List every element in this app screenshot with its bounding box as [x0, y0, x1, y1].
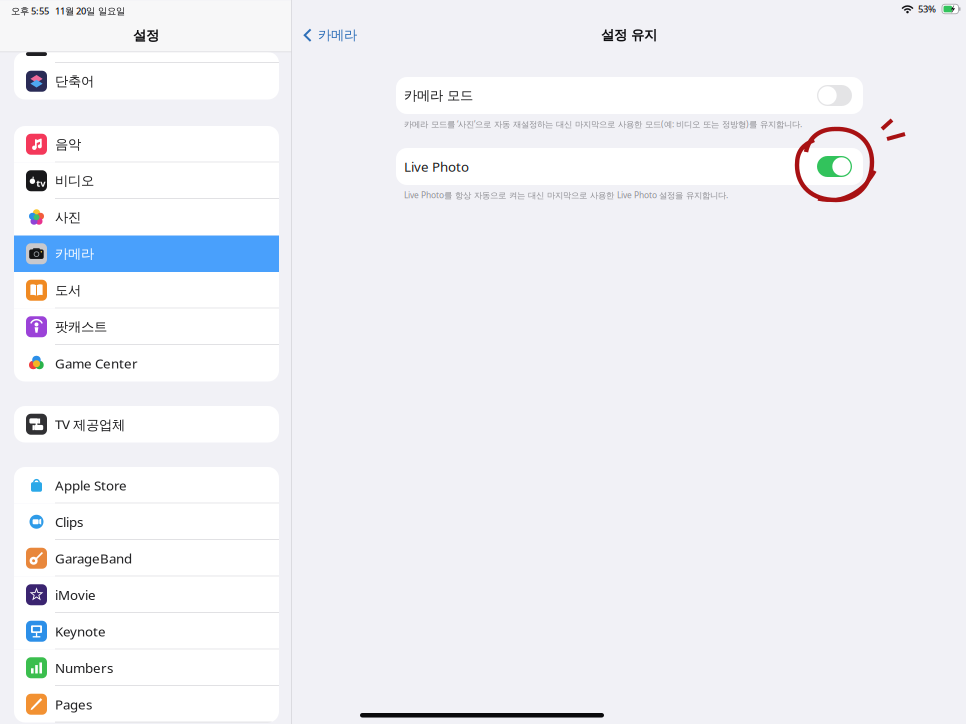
button[interactable]: Pages [14, 686, 279, 722]
button[interactable]: 도서 [14, 272, 279, 308]
staticText: 카메라 모드를 ‘사진’으로 자동 재설정하는 대신 마지막으로 사용한 모드(… [404, 118, 802, 130]
button[interactable]: 카메라 [292, 20, 365, 50]
button[interactable]: Numbers [14, 649, 279, 686]
staticText: 설정 유지 [601, 27, 657, 43]
staticText: 설정 [133, 27, 159, 44]
staticText: GarageBand [55, 549, 132, 567]
staticText: 카메라 [318, 27, 357, 43]
button[interactable]: 팟캐스트 [14, 308, 279, 345]
button[interactable]: 카메라 [14, 235, 279, 272]
button[interactable]: 카메라 모드 [396, 77, 863, 114]
staticText: tv [36, 177, 45, 189]
staticText: Live Photo [404, 157, 469, 176]
staticText: Apple Store [55, 476, 127, 494]
staticText: Pages [55, 695, 92, 713]
staticText: 비디오 [55, 172, 94, 189]
staticText: 카메라 [55, 245, 94, 262]
button[interactable]: Live Photo [396, 148, 863, 185]
staticText: 53% [918, 3, 936, 15]
button[interactable]: 사진 [14, 199, 279, 235]
staticText: iMovie [55, 586, 96, 604]
button[interactable]: Clips [14, 503, 279, 540]
staticText: Keynote [55, 622, 106, 640]
button[interactable]: iMovie [14, 576, 279, 613]
button[interactable]: 음악 [14, 126, 279, 162]
staticText: 카메라 모드 [404, 87, 473, 104]
staticText: 도서 [55, 282, 81, 299]
staticText: 단축어 [55, 73, 94, 90]
staticText: TV 제공업체 [55, 415, 125, 433]
button[interactable]: Apple Store [14, 467, 279, 503]
staticText: Game Center [55, 354, 138, 372]
staticText: 사진 [55, 209, 81, 226]
button[interactable]: TV 제공업체 [14, 406, 279, 442]
staticText: 팟캐스트 [55, 318, 107, 335]
button[interactable]: GarageBand [14, 540, 279, 576]
staticText: Live Photo를 항상 자동으로 켜는 대신 마지막으로 사용한 Live… [404, 189, 728, 201]
button[interactable]: 단축어 [14, 63, 279, 99]
staticText: 오후 5:55 11월 20일 일요일 [11, 4, 125, 17]
staticText: Clips [55, 513, 83, 531]
button[interactable]: Game Center [14, 345, 279, 381]
staticText: Numbers [55, 659, 113, 677]
button[interactable]: Keynote [14, 613, 279, 649]
staticText: 음악 [55, 136, 81, 153]
button[interactable]: tv [14, 162, 279, 199]
